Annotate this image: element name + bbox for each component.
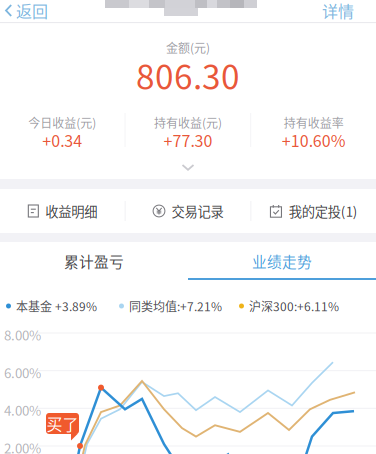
staticText: +10.60% xyxy=(282,128,346,152)
button[interactable]: 交易记录 xyxy=(126,189,250,233)
staticText: 详情 xyxy=(322,0,354,22)
staticText: 交易记录 xyxy=(171,201,223,221)
staticText: 返回 xyxy=(16,0,48,22)
staticText: 2.00% xyxy=(4,438,41,454)
button[interactable]: 业绩走势 xyxy=(188,242,376,282)
staticText: 同类均值:+7.21% xyxy=(129,297,222,315)
staticText: 6.00% xyxy=(4,363,41,382)
staticText: 806.30 xyxy=(136,51,240,99)
staticText: 业绩走势 xyxy=(252,250,312,272)
button[interactable]: 返回 xyxy=(0,0,56,21)
staticText: +77.30 xyxy=(163,128,212,152)
button[interactable]: 我的定投(1) xyxy=(251,189,376,233)
staticText: 持有收益率 xyxy=(284,114,344,131)
button[interactable]: 累计盈亏 xyxy=(0,242,188,282)
staticText: 4.00% xyxy=(4,400,41,420)
button[interactable]: 详情 xyxy=(308,0,376,21)
staticText: 沪深300:+6.11% xyxy=(249,297,339,315)
staticText: +0.34 xyxy=(42,128,82,152)
staticText: 8.00% xyxy=(4,325,41,344)
staticText: 累计盈亏 xyxy=(64,250,124,272)
staticText: 持有收益(元) xyxy=(154,114,222,131)
staticText: 本基金 +3.89% xyxy=(16,297,97,315)
staticText: 今日收益(元) xyxy=(28,114,96,131)
staticText: 收益明细 xyxy=(45,201,97,221)
staticText: 买了 xyxy=(46,412,78,435)
button[interactable]: 收益明细 xyxy=(0,189,125,233)
staticText: 金额(元) xyxy=(166,39,210,56)
staticText: 我的定投(1) xyxy=(289,201,358,221)
